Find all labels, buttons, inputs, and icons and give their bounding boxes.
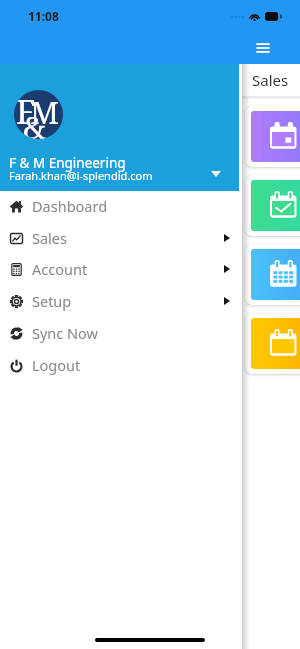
staticText: 11:08: [28, 8, 59, 24]
button[interactable]: [245, 175, 300, 236]
button[interactable]: Sales: [0, 222, 242, 254]
button[interactable]: [245, 313, 300, 374]
staticText: M: [30, 91, 60, 133]
staticText: Sync Now: [32, 323, 98, 343]
button[interactable]: Sync Now: [0, 317, 242, 349]
button[interactable]: Logout: [0, 349, 242, 381]
staticText: Account: [32, 259, 88, 279]
staticText: F & M Engineering: [9, 154, 126, 172]
staticText: Farah.khan@i-splendid.com: [9, 168, 153, 183]
staticText: Sales: [32, 228, 67, 248]
button[interactable]: Account: [0, 253, 242, 285]
staticText: &: [23, 106, 47, 139]
button[interactable]: [245, 244, 300, 305]
button[interactable]: Dashboard: [0, 190, 242, 222]
staticText: Setup: [32, 291, 72, 311]
staticText: Sales: [252, 70, 289, 90]
staticText: Logout: [32, 355, 81, 375]
staticText: F: [16, 90, 36, 134]
button[interactable]: Setup: [0, 285, 242, 317]
staticText: Dashboard: [32, 196, 108, 216]
button[interactable]: Open navigation menu: [252, 37, 274, 59]
button[interactable]: [245, 106, 300, 167]
